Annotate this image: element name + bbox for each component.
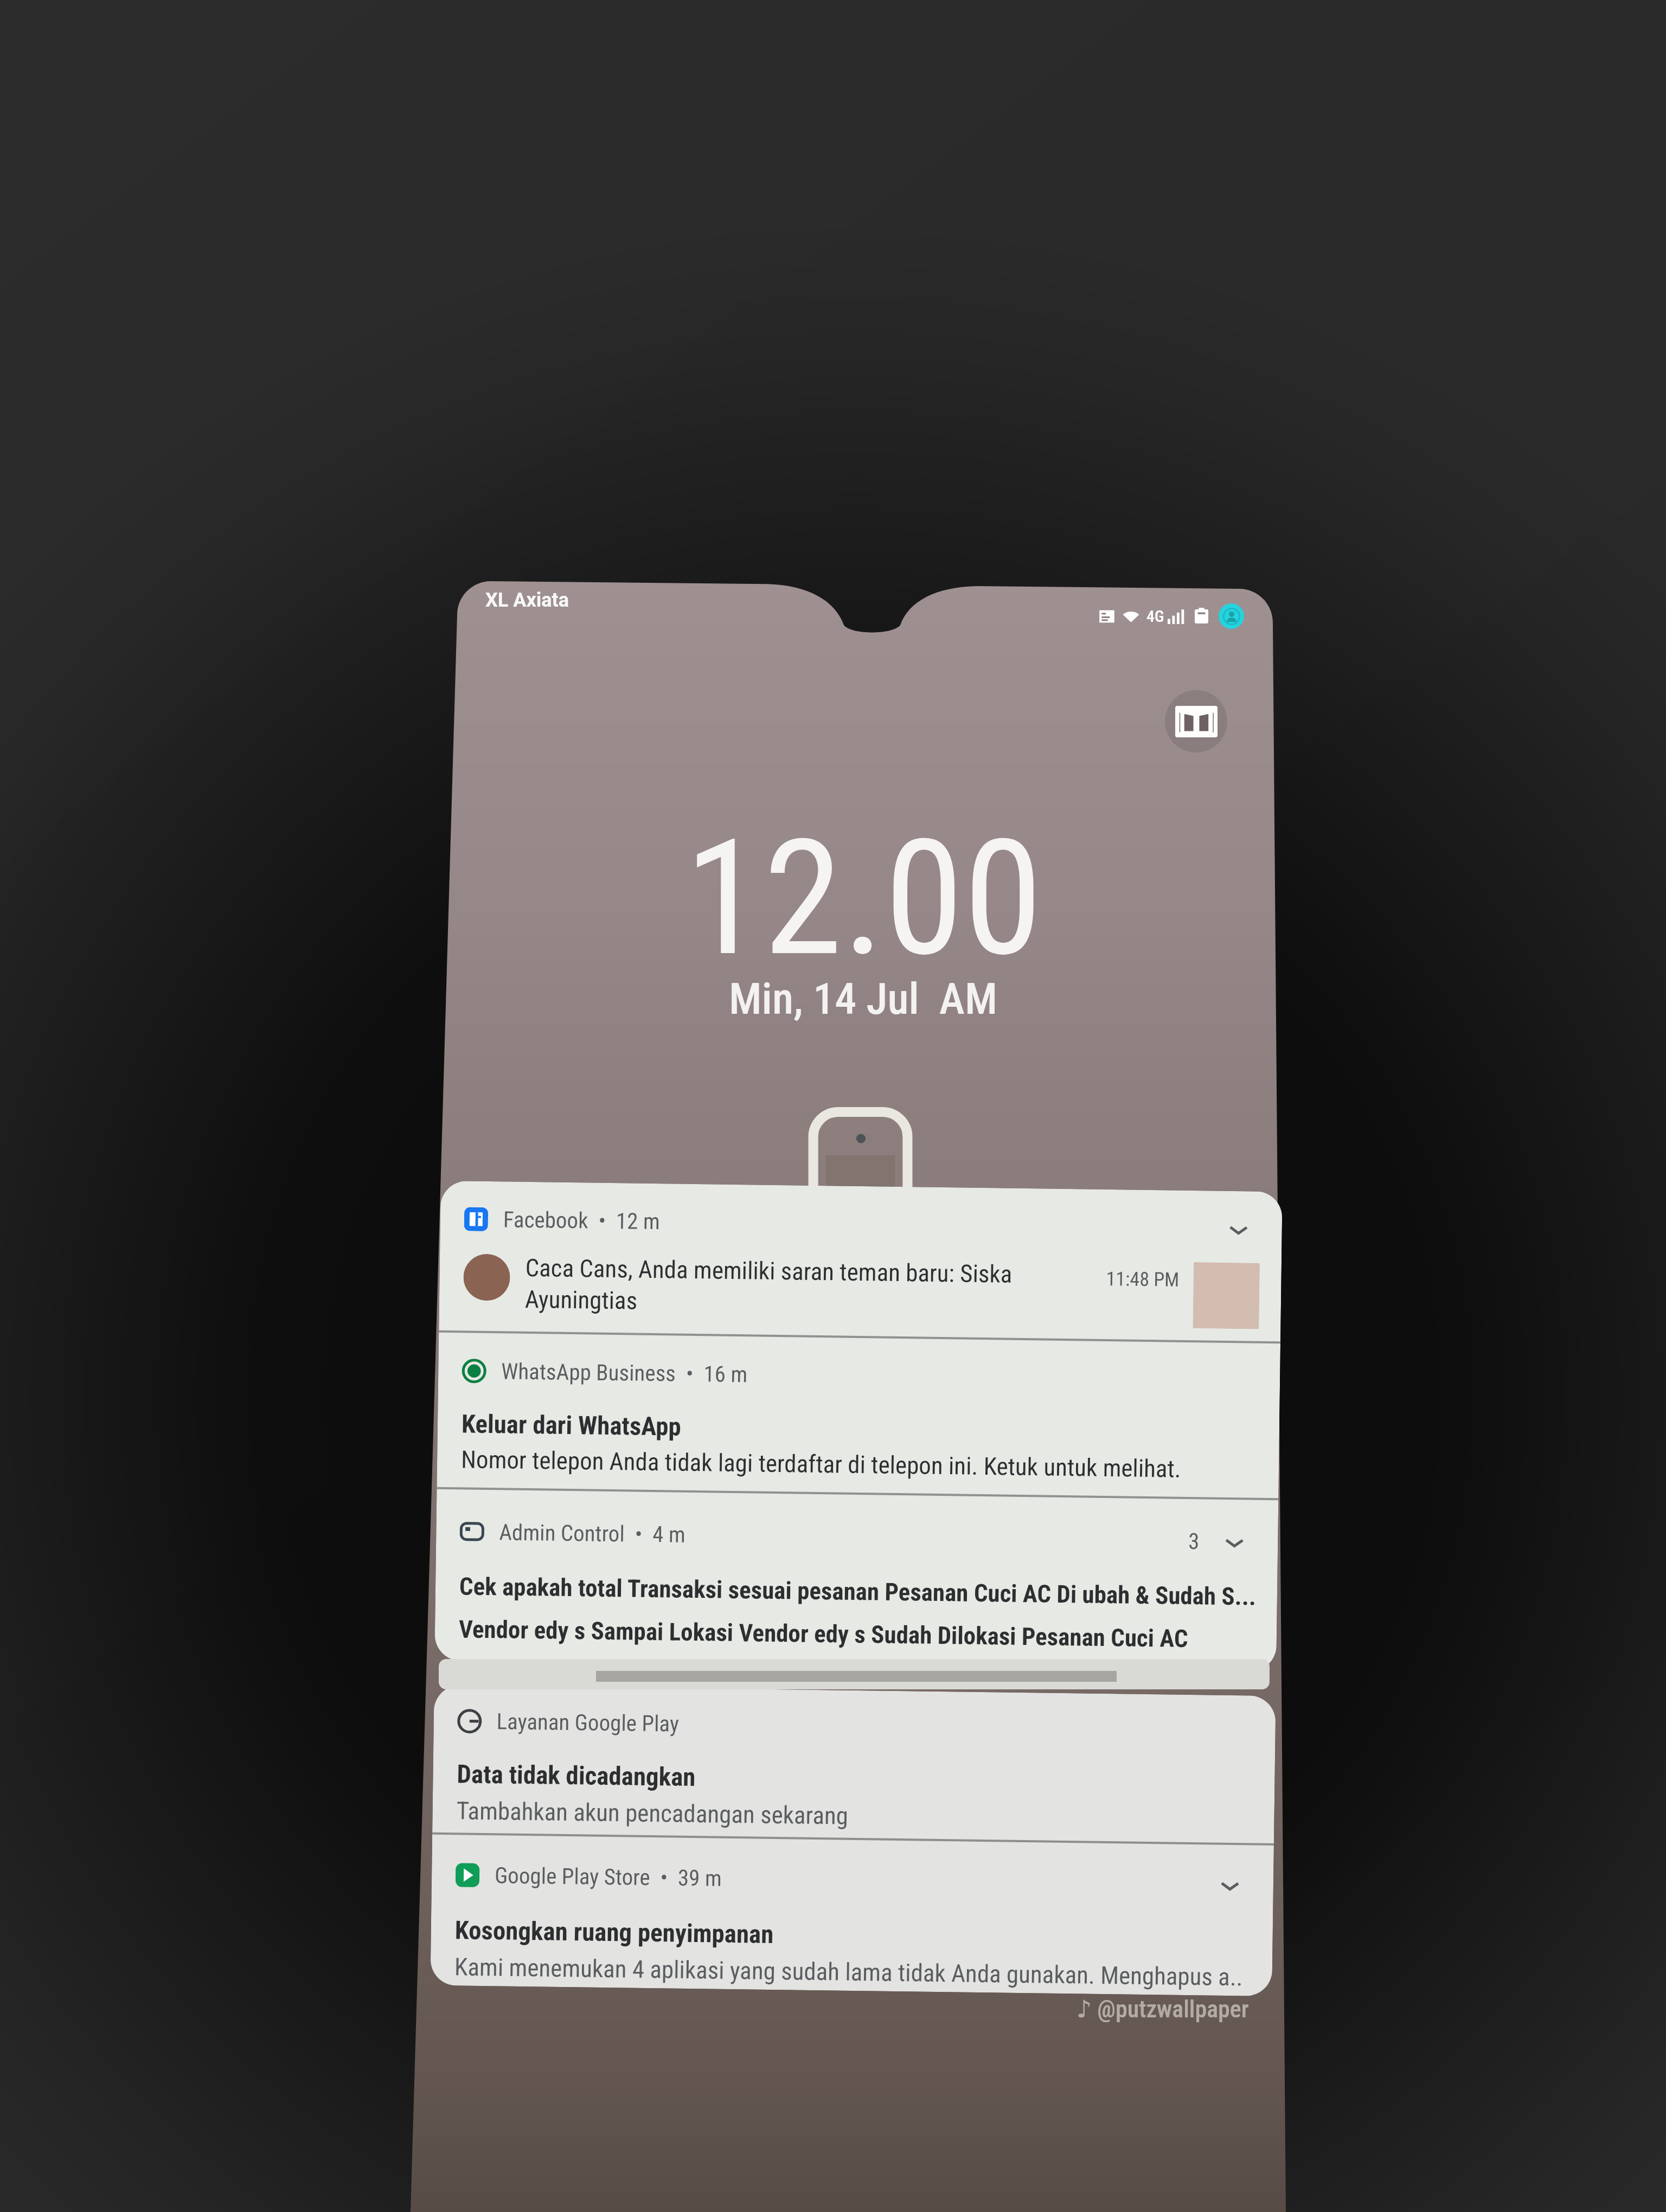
staticText: Caca Cans, Anda memiliki saran teman bar…	[525, 1253, 1102, 1321]
staticText: 4G	[1146, 607, 1164, 626]
button[interactable]: Layanan Google Play	[432, 1685, 1276, 1843]
staticText: Layanan Google Play	[496, 1708, 680, 1737]
button[interactable]: Admin Control • 4 m	[435, 1489, 1278, 1654]
button[interactable]: Expand notification	[1218, 1215, 1259, 1244]
staticText: Kami menemukan 4 aplikasi yang sudah lam…	[454, 1952, 1243, 1992]
staticText: XL Axiata	[485, 589, 569, 612]
staticText: Kosongkan ruang penyimpanan	[455, 1915, 774, 1949]
staticText: Data tidak dicadangkan	[457, 1759, 696, 1792]
staticText: 11:48 PM	[1106, 1268, 1179, 1291]
staticText: 12.00	[684, 805, 1043, 992]
button[interactable]: Facebook • 12 m	[439, 1181, 1282, 1341]
button[interactable]: Google Play Store • 39 m	[430, 1835, 1274, 1992]
staticText: ♪ @putzwallpaper	[1077, 1995, 1249, 2023]
staticText: Admin Control • 4 m	[499, 1519, 686, 1548]
staticText: WhatsApp Business • 16 m	[501, 1358, 748, 1388]
staticText: Facebook • 12 m	[503, 1207, 660, 1235]
button[interactable]: Reader widget	[1165, 690, 1227, 753]
staticText: Vendor edy s Sampai Lokasi Vendor edy s …	[459, 1615, 1188, 1653]
staticText: Nomor telepon Anda tidak lagi terdaftar …	[461, 1445, 1181, 1483]
staticText: Keluar dari WhatsApp	[461, 1409, 681, 1441]
button[interactable]: WhatsApp Business • 16 m	[437, 1333, 1280, 1498]
staticText: Tambahkan akun pencadangan sekarang	[456, 1796, 849, 1830]
button[interactable]: Expand notification	[1209, 1871, 1251, 1900]
staticText: Min, 14 Jul AM	[729, 974, 998, 1025]
staticText: Cek apakah total Transaksi sesuai pesana…	[459, 1572, 1257, 1611]
button[interactable]: Expand notification	[1214, 1528, 1255, 1556]
button[interactable]: Locked	[809, 1112, 912, 1220]
button[interactable]: Account	[1219, 603, 1244, 629]
staticText: 3	[1188, 1528, 1200, 1555]
staticText: Google Play Store • 39 m	[494, 1862, 722, 1891]
